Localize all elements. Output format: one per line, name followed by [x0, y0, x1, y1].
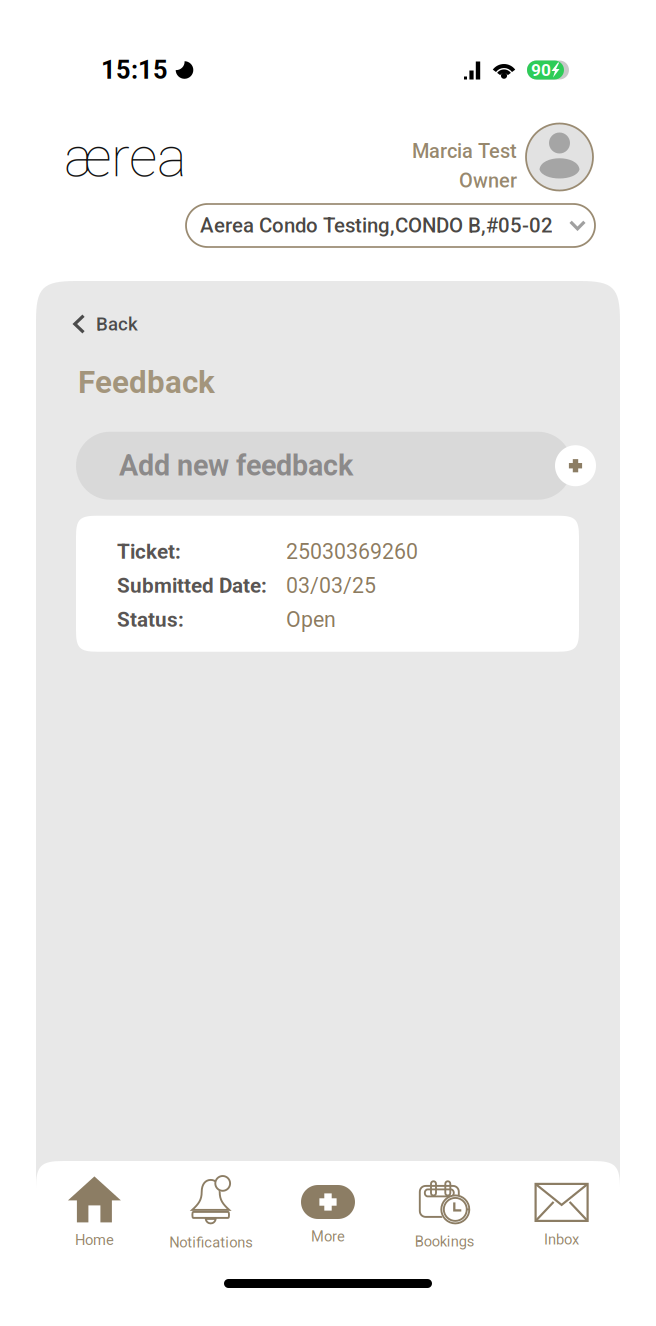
staticText: Notifications: [169, 1234, 253, 1251]
staticText: Status:: [117, 608, 184, 632]
button[interactable]: Bookings: [386, 1161, 503, 1259]
staticText: Back: [96, 313, 138, 335]
button[interactable]: Inbox: [503, 1161, 620, 1259]
staticText: Feedback: [78, 364, 215, 401]
button[interactable]: Home: [36, 1161, 153, 1259]
button[interactable]: Aerea Condo Testing,CONDO B,#05-02: [186, 204, 595, 247]
button[interactable]: More: [270, 1161, 386, 1259]
staticText: 03/03/25: [286, 573, 376, 598]
staticText: Ticket:: [117, 540, 181, 564]
button[interactable]: Add new feedback: [555, 445, 596, 486]
staticText: Inbox: [544, 1231, 579, 1248]
button[interactable]: Marcia Test: [412, 122, 593, 192]
staticText: 15:15: [101, 55, 168, 85]
button[interactable]: Notifications: [153, 1161, 270, 1259]
staticText: Submitted Date:: [117, 574, 267, 598]
staticText: Open: [286, 607, 336, 632]
staticText: 25030369260: [286, 539, 418, 564]
staticText: Aerea Condo Testing,CONDO B,#05-02: [200, 213, 553, 237]
staticText: Bookings: [415, 1233, 475, 1250]
staticText: Marcia Test: [412, 140, 517, 163]
button[interactable]: Back: [36, 281, 620, 343]
staticText: Add new feedback: [119, 449, 353, 482]
staticText: ærea: [64, 124, 187, 190]
staticText: More: [311, 1228, 345, 1245]
button[interactable]: Add new feedback: [76, 432, 572, 500]
staticText: Home: [75, 1231, 114, 1249]
staticText: Owner: [459, 169, 517, 192]
staticText: 90: [531, 60, 551, 80]
